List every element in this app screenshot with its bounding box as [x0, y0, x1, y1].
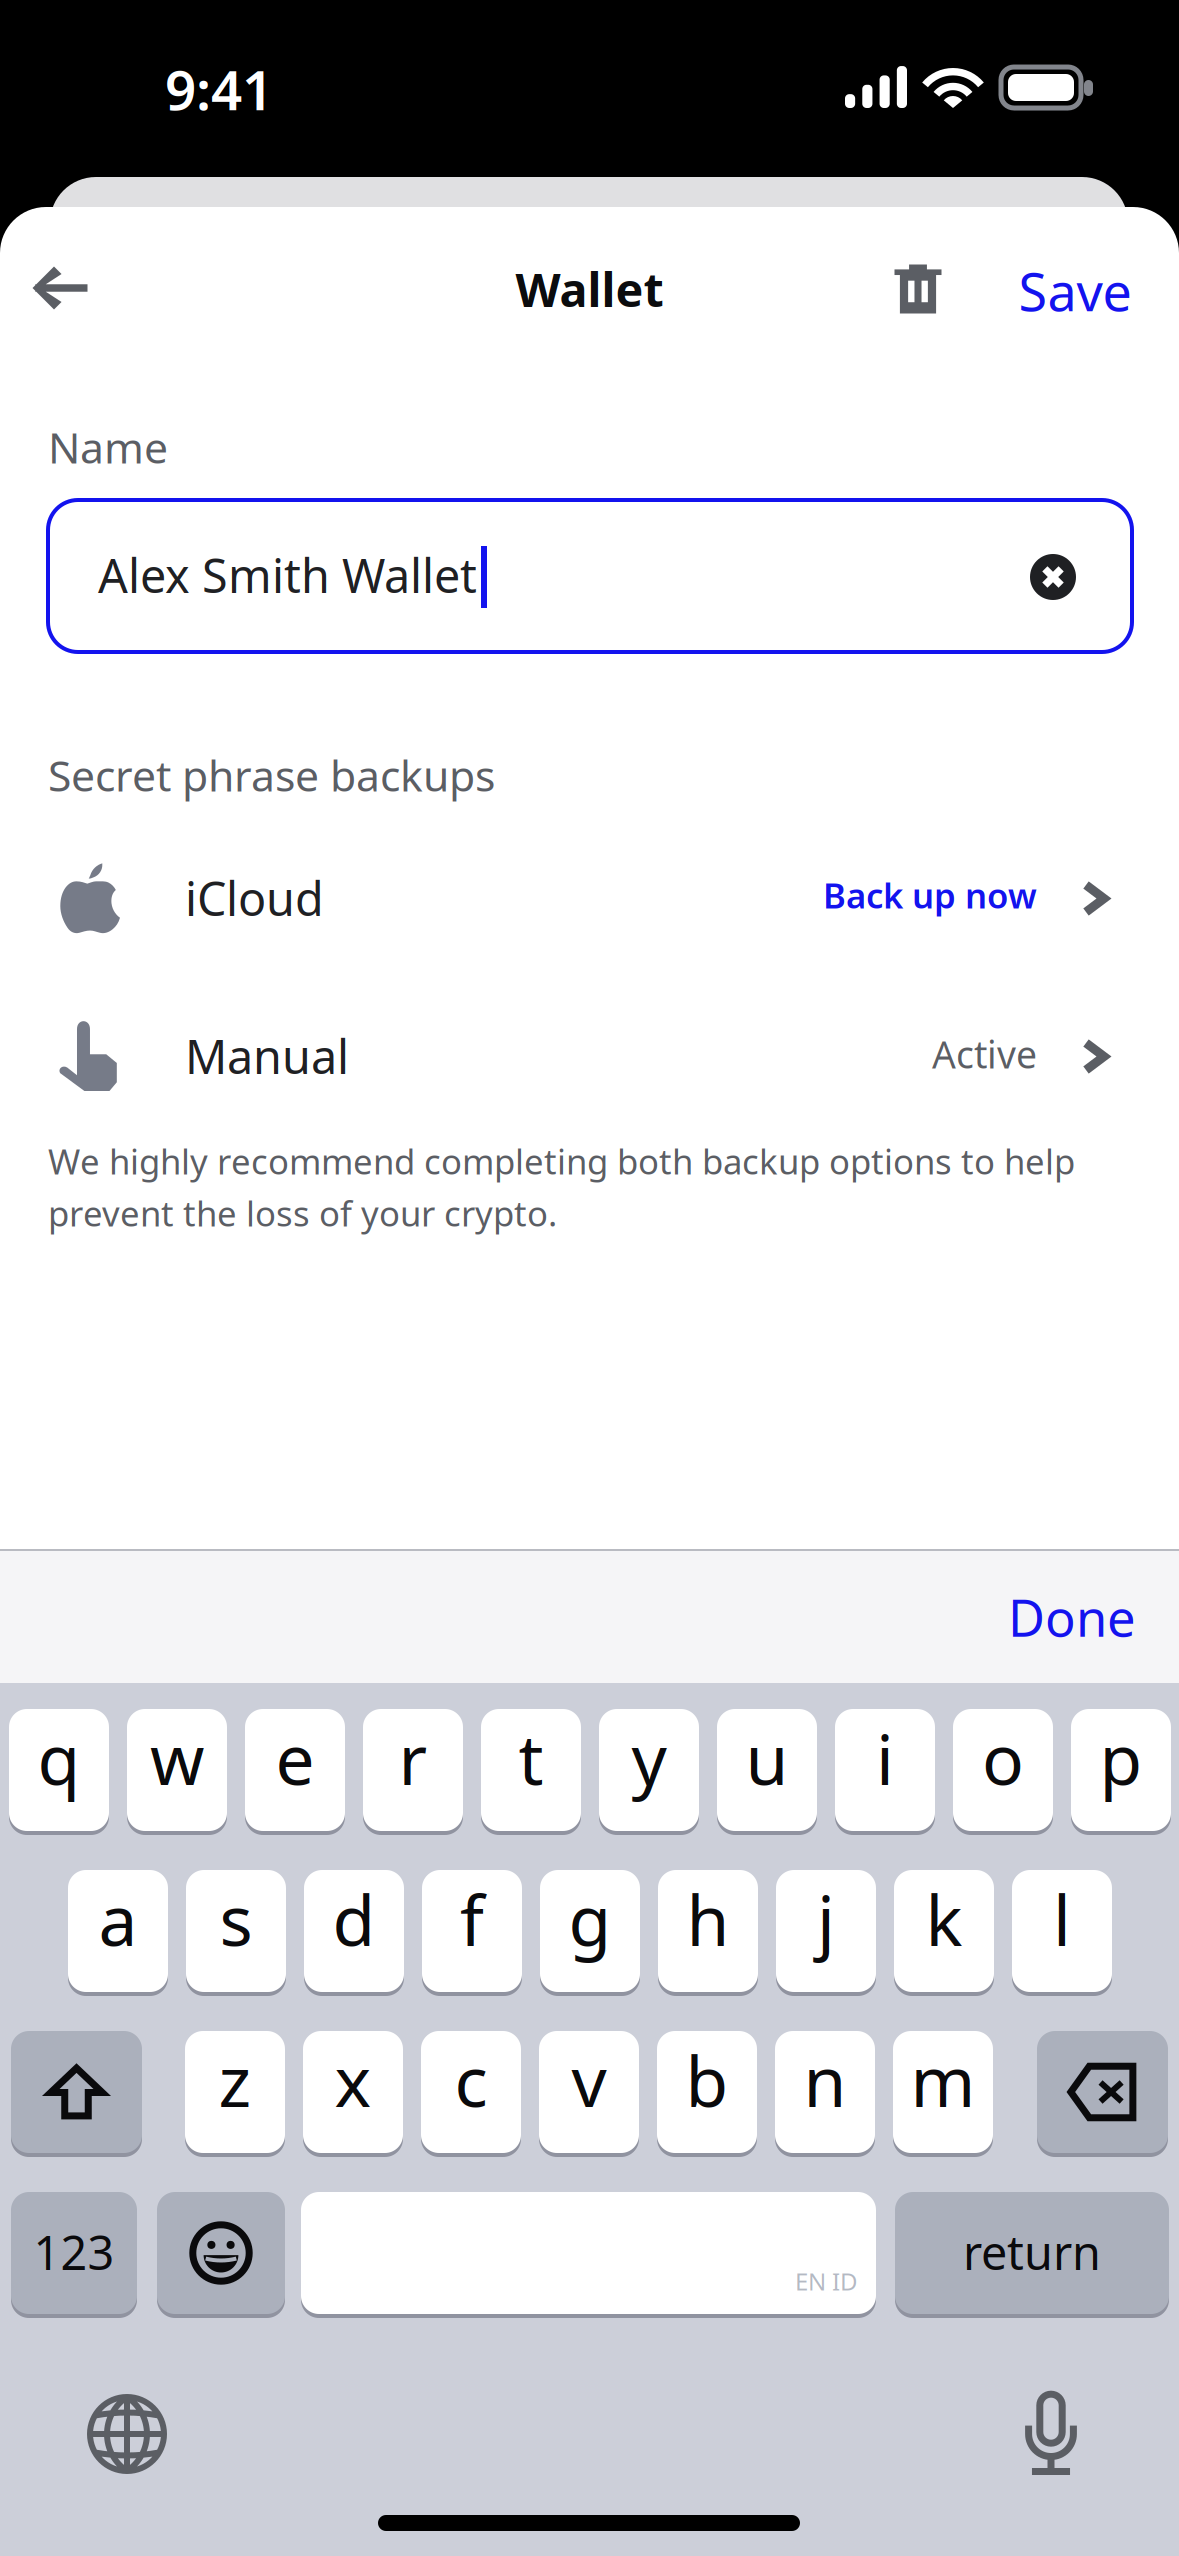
staticText: d	[332, 1873, 375, 1965]
staticText: u	[745, 1712, 788, 1804]
button[interactable]: d	[304, 1868, 404, 1994]
staticText: a	[98, 1873, 137, 1965]
button[interactable]: u	[717, 1707, 817, 1833]
staticText: o	[982, 1712, 1024, 1804]
staticText: Alex Smith Wallet	[98, 544, 477, 606]
button[interactable]: y	[599, 1707, 699, 1833]
staticText: c	[454, 2034, 487, 2126]
staticText: r	[398, 1712, 427, 1804]
staticText: return	[963, 2221, 1101, 2283]
button[interactable]: v	[539, 2029, 639, 2155]
staticText: p	[1099, 1712, 1142, 1804]
button[interactable]: o	[953, 1707, 1053, 1833]
button[interactable]: x	[303, 2029, 403, 2155]
staticText: y	[631, 1712, 666, 1804]
staticText: s	[219, 1873, 252, 1965]
button[interactable]: l	[1012, 1868, 1112, 1994]
staticText: g	[568, 1873, 611, 1965]
button[interactable]: k	[894, 1868, 994, 1994]
button[interactable]: g	[540, 1868, 640, 1994]
button[interactable]: f	[422, 1868, 522, 1994]
staticText: prevent the loss of your crypto.	[48, 1190, 557, 1236]
button[interactable]: Delete wallet	[863, 239, 973, 339]
staticText: l	[1053, 1873, 1071, 1965]
staticText: x	[334, 2034, 371, 2126]
button[interactable]: Emoji	[157, 2190, 285, 2316]
button[interactable]: Dictation	[976, 2372, 1126, 2492]
button[interactable]: r	[363, 1707, 463, 1833]
staticText: z	[218, 2034, 251, 2126]
staticText: Secret phrase backups	[48, 747, 495, 803]
button[interactable]: return	[895, 2190, 1169, 2316]
staticText: t	[518, 1712, 543, 1804]
button[interactable]: q	[9, 1707, 109, 1833]
button[interactable]: Done	[972, 1552, 1172, 1682]
staticText: Active	[932, 1029, 1037, 1079]
staticText: b	[685, 2034, 728, 2126]
staticText: EN ID	[795, 2265, 858, 2297]
staticText: k	[925, 1873, 962, 1965]
button[interactable]: Manual	[0, 980, 1179, 1132]
button[interactable]: t	[481, 1707, 581, 1833]
staticText: 9:41	[165, 53, 273, 125]
button[interactable]: Save	[995, 241, 1155, 341]
button[interactable]: j	[776, 1868, 876, 1994]
staticText: m	[910, 2034, 975, 2126]
button[interactable]: z	[185, 2029, 285, 2155]
staticText: e	[275, 1712, 314, 1804]
button[interactable]: m	[893, 2029, 993, 2155]
staticText: iCloud	[185, 867, 324, 929]
staticText: w	[150, 1712, 204, 1804]
button[interactable]: a	[68, 1868, 168, 1994]
staticText: n	[803, 2034, 846, 2126]
button[interactable]: w	[127, 1707, 227, 1833]
staticText: 123	[33, 2221, 114, 2283]
staticText: Wallet	[515, 258, 663, 320]
staticText: q	[37, 1712, 80, 1804]
staticText: f	[460, 1873, 484, 1965]
staticText: We highly recommend completing both back…	[48, 1138, 1075, 1184]
staticText: Back up now	[823, 872, 1037, 918]
staticText: h	[686, 1873, 729, 1965]
staticText: Name	[48, 419, 168, 475]
button[interactable]: Delete	[1037, 2029, 1168, 2155]
staticText: Manual	[185, 1025, 349, 1087]
button[interactable]: Space	[301, 2190, 876, 2316]
button[interactable]: Next keyboard	[52, 2374, 202, 2494]
button[interactable]: p	[1071, 1707, 1171, 1833]
button[interactable]: Shift	[11, 2029, 142, 2155]
button[interactable]: h	[658, 1868, 758, 1994]
button[interactable]: Back	[0, 238, 120, 338]
button[interactable]: iCloud	[0, 822, 1179, 974]
button[interactable]: 123	[11, 2190, 137, 2316]
button[interactable]: c	[421, 2029, 521, 2155]
button[interactable]: i	[835, 1707, 935, 1833]
staticText: i	[876, 1712, 894, 1804]
staticText: v	[571, 2034, 606, 2126]
staticText: j	[817, 1873, 835, 1965]
button[interactable]: e	[245, 1707, 345, 1833]
button[interactable]: s	[186, 1868, 286, 1994]
button[interactable]: Clear text	[1005, 529, 1101, 625]
staticText: Done	[1008, 1583, 1136, 1651]
staticText: Save	[1018, 256, 1131, 326]
button[interactable]: b	[657, 2029, 757, 2155]
button[interactable]: n	[775, 2029, 875, 2155]
